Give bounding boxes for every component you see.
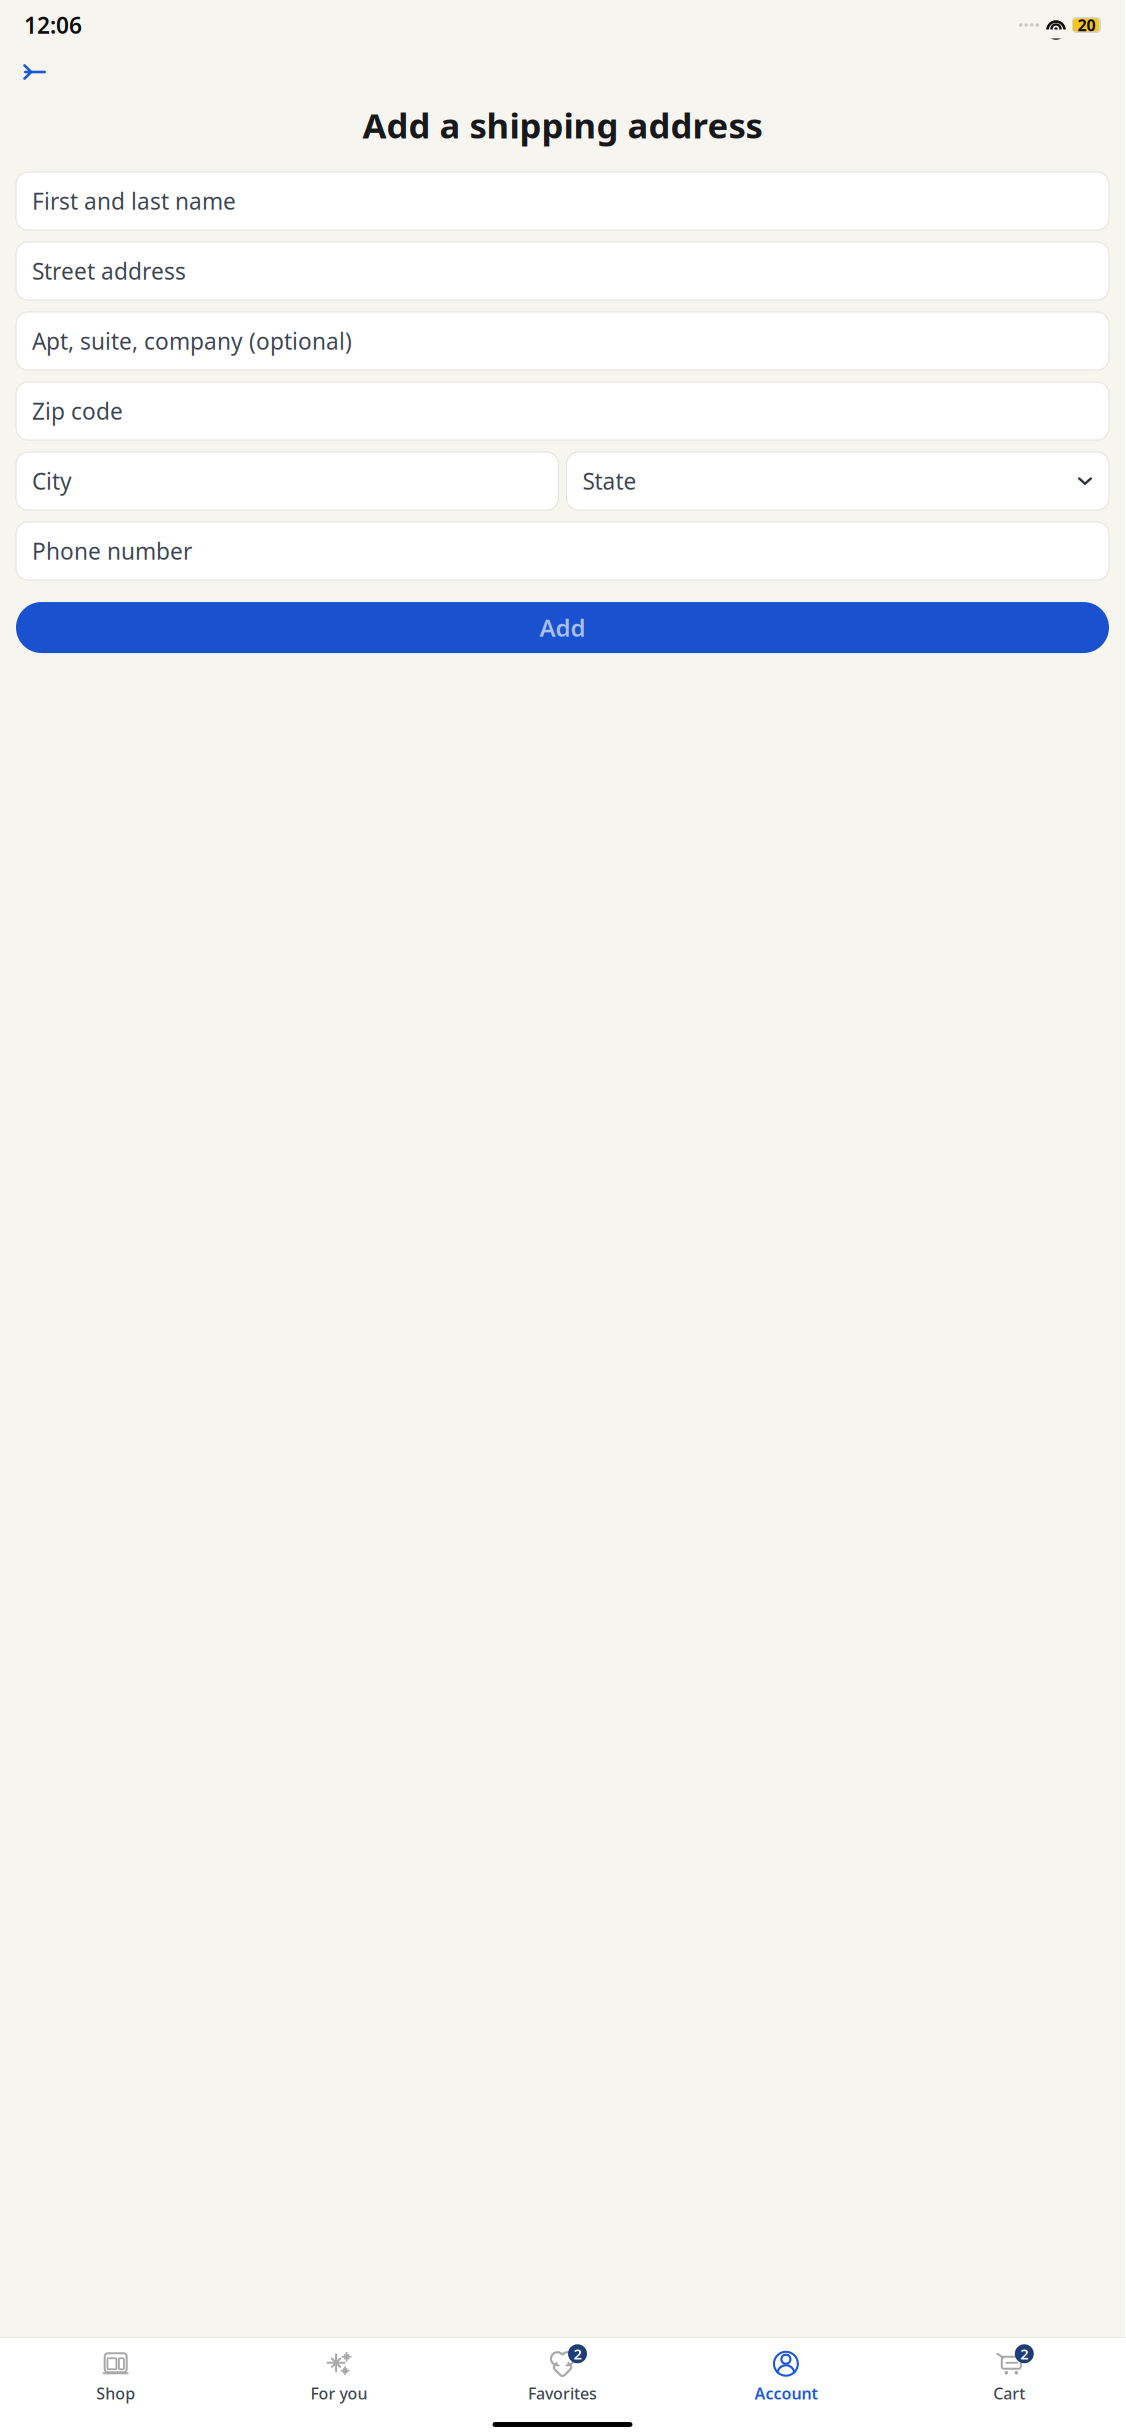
button[interactable]: For you <box>227 2342 451 2408</box>
staticText: Add <box>539 612 585 643</box>
button[interactable]: 2 <box>898 2342 1121 2408</box>
staticText: Shop <box>96 2383 135 2404</box>
staticText: Account <box>754 2383 817 2404</box>
staticText: 2 <box>1020 2344 1028 2363</box>
staticText: Zip code <box>32 396 123 426</box>
button[interactable]: Back <box>12 52 56 92</box>
button[interactable]: Street address <box>16 242 1109 300</box>
staticText: 12:06 <box>24 10 82 40</box>
button[interactable]: State <box>566 452 1109 510</box>
button[interactable]: Account <box>674 2342 898 2408</box>
staticText: Apt, suite, company (optional) <box>32 326 352 356</box>
staticText: First and last name <box>32 186 236 216</box>
staticText: State <box>582 466 636 496</box>
staticText: 2 <box>573 2344 581 2363</box>
button[interactable]: Shop <box>4 2342 227 2408</box>
button[interactable]: Add <box>16 602 1109 653</box>
button[interactable]: Apt, suite, company (optional) <box>16 312 1109 370</box>
button[interactable]: First and last name <box>16 172 1109 230</box>
button[interactable]: City <box>16 452 558 510</box>
button[interactable]: Phone number <box>16 522 1109 580</box>
staticText: Favorites <box>528 2383 597 2404</box>
button[interactable]: 2 <box>451 2342 674 2408</box>
staticText: 20 <box>1077 14 1095 36</box>
staticText: Phone number <box>32 536 192 566</box>
staticText: For you <box>311 2383 368 2404</box>
staticText: City <box>32 466 72 496</box>
staticText: Street address <box>32 256 186 286</box>
button[interactable]: Zip code <box>16 382 1109 440</box>
staticText: Add a shipping address <box>362 102 762 148</box>
staticText: Cart <box>993 2383 1025 2404</box>
